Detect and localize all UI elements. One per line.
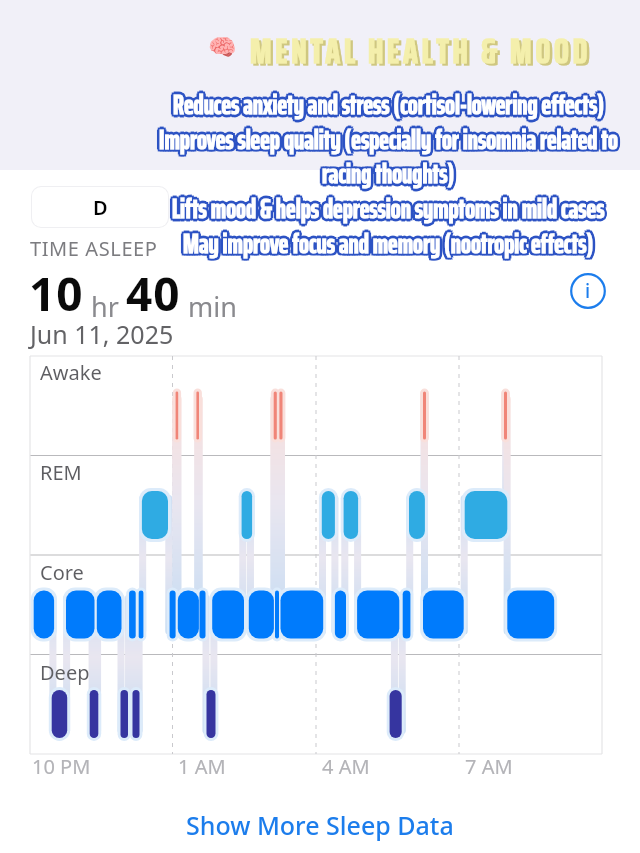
staticText: Show More Sleep Data xyxy=(186,808,454,842)
staticText: 10 xyxy=(29,262,84,325)
staticText: Jun 11, 2025 xyxy=(30,317,174,351)
button[interactable]: Info xyxy=(570,273,606,309)
staticText: TIME ASLEEP xyxy=(30,235,158,262)
staticText: 40 xyxy=(126,262,181,325)
staticText: Awake xyxy=(40,359,102,386)
staticText: hr xyxy=(84,288,126,325)
staticText: Core xyxy=(40,559,84,586)
staticText: D xyxy=(93,194,108,221)
button[interactable]: Show More Sleep Data xyxy=(0,808,640,842)
staticText: min xyxy=(181,288,237,325)
staticText: REM xyxy=(40,459,82,486)
staticText: Deep xyxy=(40,659,90,686)
staticText: 1 AM xyxy=(178,753,226,780)
staticText: 🧠 xyxy=(208,34,237,61)
button[interactable]: D xyxy=(32,187,168,227)
staticText: 10 PM xyxy=(32,753,91,780)
staticText: 7 AM xyxy=(465,753,513,780)
staticText: 4 AM xyxy=(322,753,370,780)
staticText: i xyxy=(585,278,591,304)
